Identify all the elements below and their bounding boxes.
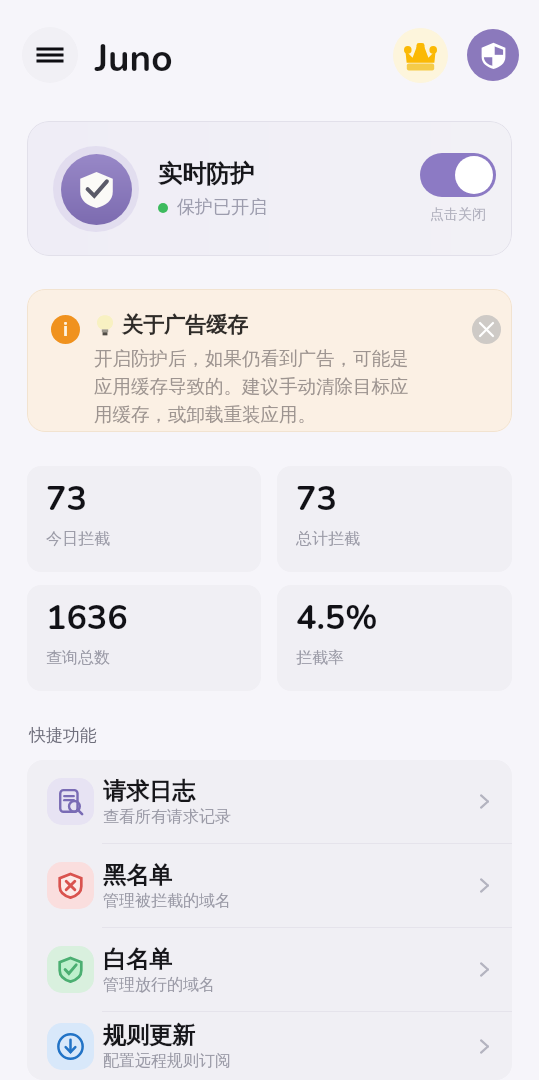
button[interactable]: 1636: [27, 585, 261, 691]
staticText: 管理被拦截的域名: [103, 891, 231, 911]
button[interactable]: 4.5%: [277, 585, 512, 691]
button[interactable]: Premium: [393, 28, 448, 83]
staticText: 配置远程规则订阅: [103, 1051, 231, 1071]
staticText: 关于广告缓存: [122, 312, 248, 338]
staticText: i: [63, 318, 69, 341]
staticText: 规则更新: [103, 1021, 195, 1050]
button[interactable]: Menu: [22, 27, 78, 83]
staticText: 白名单: [103, 945, 172, 974]
staticText: 保护已开启: [177, 196, 267, 219]
button[interactable]: 白名单: [27, 928, 512, 1011]
staticText: 开启防护后，如果仍看到广告，可能是 应用缓存导致的。建议手动清除目标应 用缓存，…: [94, 347, 409, 426]
button[interactable]: 73: [277, 466, 512, 572]
staticText: 拦截率: [296, 648, 344, 668]
staticText: 点击关闭: [430, 206, 486, 224]
button[interactable]: 规则更新: [27, 1012, 512, 1080]
button[interactable]: 请求日志: [27, 760, 512, 843]
staticText: 管理放行的域名: [103, 975, 215, 995]
staticText: Juno: [95, 34, 173, 84]
staticText: 实时防护: [158, 159, 254, 189]
staticText: 总计拦截: [296, 529, 360, 549]
button[interactable]: 黑名单: [27, 844, 512, 927]
staticText: 4.5%: [296, 595, 378, 641]
staticText: 1636: [46, 595, 128, 641]
button[interactable]: Dismiss: [472, 315, 501, 344]
staticText: 73: [46, 476, 87, 522]
staticText: 请求日志: [103, 777, 195, 806]
staticText: 黑名单: [103, 861, 172, 890]
staticText: 今日拦截: [46, 529, 110, 549]
button[interactable]: 73: [27, 466, 261, 572]
staticText: 查看所有请求记录: [103, 807, 231, 827]
staticText: 73: [296, 476, 337, 522]
button[interactable]: 实时防护: [27, 121, 512, 256]
button[interactable]: Protection status: [467, 29, 519, 81]
staticText: 快捷功能: [29, 725, 97, 746]
button[interactable]: Toggle protection: [420, 153, 496, 197]
staticText: 查询总数: [46, 648, 110, 668]
